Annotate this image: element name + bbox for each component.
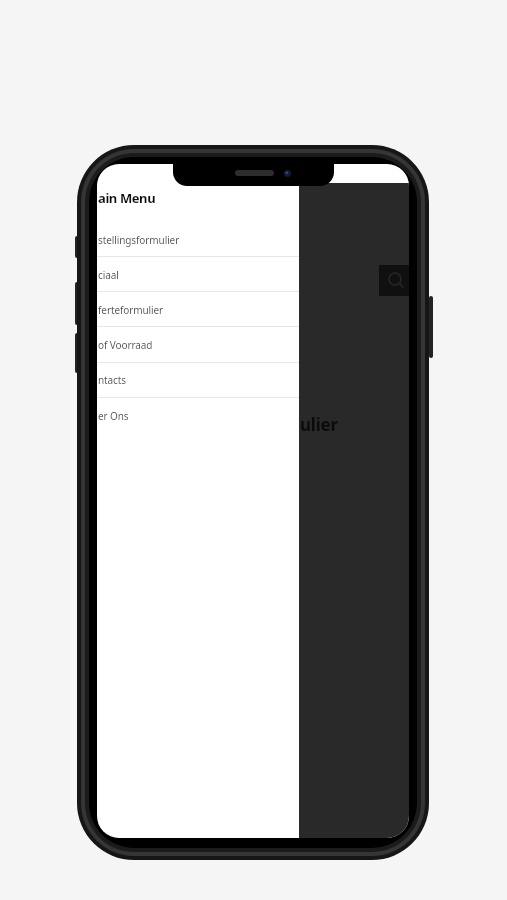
- staticText: of Voorraad: [98, 338, 153, 352]
- button[interactable]: ciaal: [97, 258, 299, 288]
- button[interactable]: ntacts: [97, 363, 299, 393]
- staticText: er Ons: [98, 409, 129, 423]
- button[interactable]: er Ons: [97, 399, 299, 429]
- button[interactable]: of Voorraad: [97, 328, 299, 358]
- staticText: ciaal: [98, 268, 119, 282]
- button[interactable]: ferteformulier: [97, 293, 299, 323]
- button[interactable]: [299, 183, 409, 838]
- button[interactable]: [379, 265, 409, 296]
- staticText: ain Menu: [98, 189, 156, 207]
- staticText: ntacts: [98, 373, 126, 387]
- staticText: ferteformulier: [98, 303, 164, 317]
- button[interactable]: stellingsformulier: [97, 223, 299, 253]
- staticText: stellingsformulier: [98, 233, 180, 247]
- staticText: ulier: [300, 413, 338, 436]
